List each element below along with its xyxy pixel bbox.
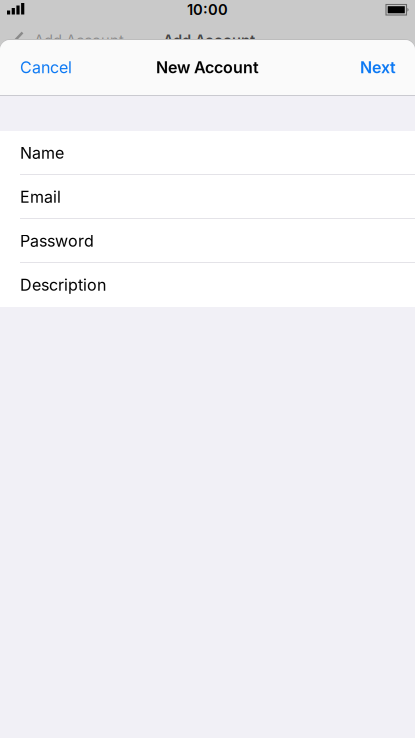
button[interactable]: Cancel: [20, 58, 72, 77]
button[interactable]: Name: [0, 131, 415, 175]
button[interactable]: Email: [0, 175, 415, 219]
staticText: Description: [20, 276, 106, 294]
staticText: Cancel: [20, 58, 72, 77]
staticText: Add Account: [163, 31, 255, 49]
staticText: Add Account: [34, 31, 124, 49]
staticText: Next: [360, 58, 396, 77]
button[interactable]: Password: [0, 219, 415, 263]
button[interactable]: Description: [0, 263, 415, 307]
staticText: New Account: [156, 58, 259, 77]
button[interactable]: Next: [360, 58, 396, 77]
staticText: Email: [20, 188, 61, 206]
staticText: Password: [20, 232, 94, 250]
staticText: 10:00: [187, 1, 228, 18]
staticText: Name: [20, 144, 64, 162]
